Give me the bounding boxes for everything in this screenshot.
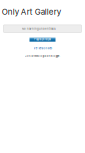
staticText: No hay ninguna entrada. xyxy=(22,27,56,30)
staticText: Ver versión web xyxy=(33,47,51,50)
button[interactable]: Página principal xyxy=(29,37,55,42)
staticText: Página principal xyxy=(34,38,51,41)
button[interactable]: Ver versión web xyxy=(33,47,51,50)
staticText: Only Art Gallery xyxy=(2,7,61,17)
staticText: Con la tecnología de Blogger. xyxy=(24,54,60,58)
